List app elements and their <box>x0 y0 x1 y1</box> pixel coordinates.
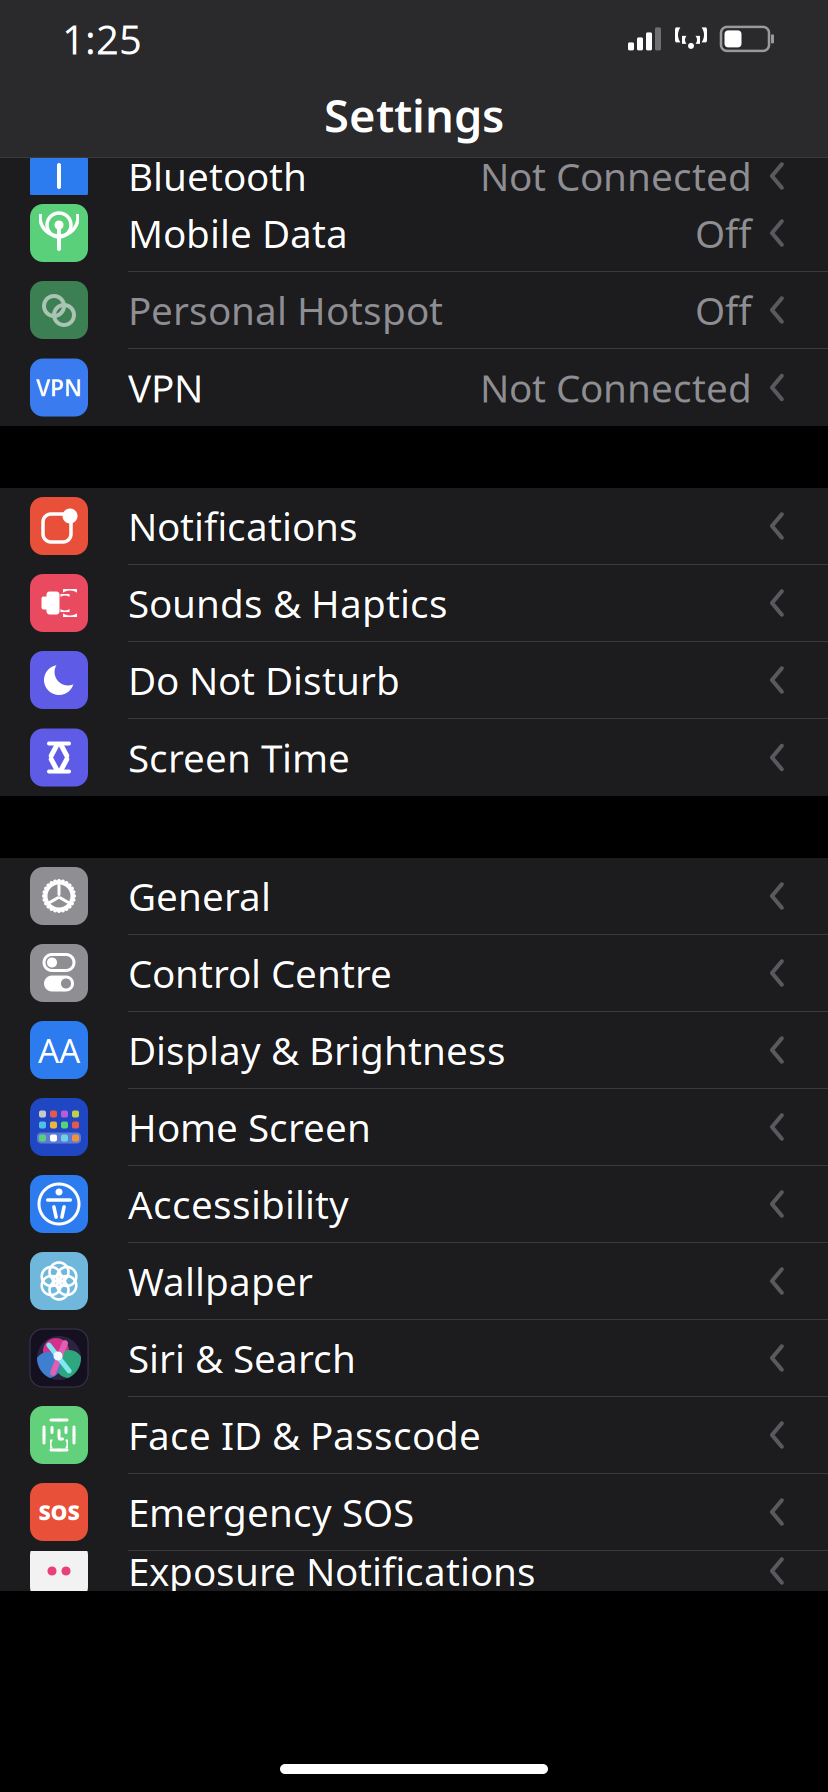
button[interactable]: Face ID & Passcode <box>0 1397 828 1474</box>
staticText: Screen Time <box>128 732 350 783</box>
button[interactable]: Exposure Notifications <box>0 1532 828 1609</box>
staticText: Bluetooth <box>128 150 307 202</box>
staticText: General <box>128 870 271 922</box>
staticText: Control Centre <box>128 947 392 999</box>
staticText: Mobile Data <box>128 207 348 259</box>
button[interactable]: Notifications <box>0 488 828 565</box>
button[interactable]: Wallpaper <box>0 1243 828 1320</box>
staticText: Notifications <box>128 500 358 552</box>
staticText: Accessibility <box>128 1178 349 1230</box>
button[interactable]: SOS <box>0 1474 828 1551</box>
staticText: VPN <box>36 372 82 402</box>
staticText: Not Connected <box>480 362 752 413</box>
staticText: Siri & Search <box>128 1332 356 1384</box>
staticText: Do Not Disturb <box>128 654 400 706</box>
button[interactable]: AA <box>0 1012 828 1089</box>
button[interactable]: Do Not Disturb <box>0 642 828 719</box>
button[interactable]: VPN <box>0 349 828 426</box>
button[interactable]: Screen Time <box>0 719 828 796</box>
staticText: Not Connected <box>480 150 752 202</box>
button[interactable]: Personal Hotspot <box>0 272 828 349</box>
staticText: Settings <box>324 85 504 145</box>
button[interactable]: Accessibility <box>0 1166 828 1243</box>
button[interactable]: Sounds & Haptics <box>0 565 828 642</box>
button[interactable]: Control Centre <box>0 935 828 1012</box>
staticText: Personal Hotspot <box>128 284 443 336</box>
staticText: SOS <box>38 1498 79 1526</box>
button[interactable]: Mobile Data <box>0 195 828 272</box>
staticText: Face ID & Passcode <box>128 1409 481 1461</box>
button[interactable]: General <box>0 858 828 935</box>
staticText: AA <box>38 1028 80 1072</box>
staticText: Wallpaper <box>128 1255 313 1307</box>
staticText: Home Screen <box>128 1101 371 1153</box>
staticText: Emergency SOS <box>128 1486 414 1538</box>
button[interactable]: Bluetooth <box>0 138 828 215</box>
staticText: Sounds & Haptics <box>128 577 448 629</box>
button[interactable]: Home Screen <box>0 1089 828 1166</box>
staticText: Off <box>695 207 752 259</box>
staticText: Display & Brightness <box>128 1024 506 1076</box>
staticText: Off <box>695 284 752 336</box>
staticText: VPN <box>128 362 203 413</box>
button[interactable]: Siri & Search <box>0 1320 828 1397</box>
staticText: Exposure Notifications <box>128 1545 536 1597</box>
staticText: 1:25 <box>62 12 142 65</box>
